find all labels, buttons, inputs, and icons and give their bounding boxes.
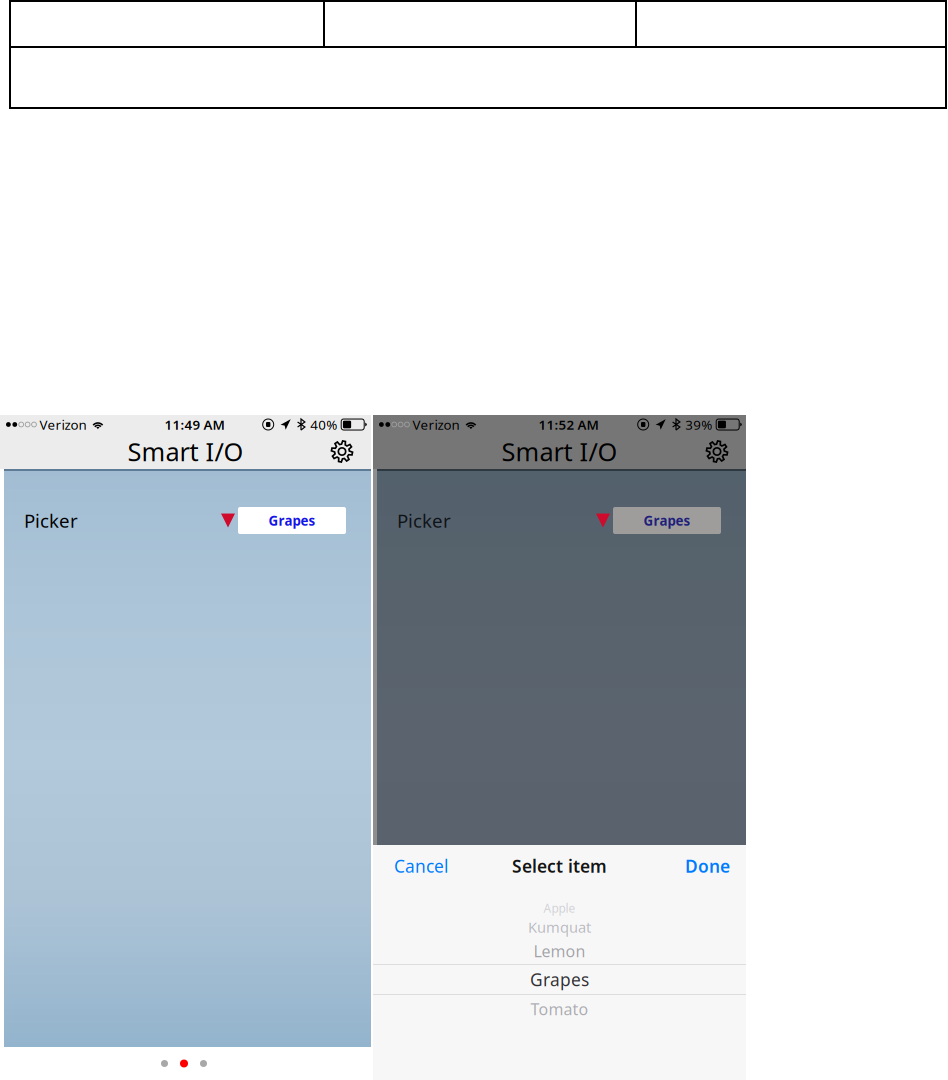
- staticText: Picker: [397, 508, 451, 533]
- staticText: Kumquat: [528, 917, 591, 937]
- staticText: Verizon: [39, 416, 86, 433]
- button[interactable]: Cancel: [389, 845, 453, 886]
- staticText: 11:49 AM: [164, 416, 224, 433]
- button[interactable]: Done: [680, 845, 735, 886]
- staticText: Verizon: [412, 416, 459, 433]
- staticText: Lemon: [533, 940, 585, 962]
- button[interactable]: Settings: [323, 434, 361, 468]
- button[interactable]: Grapes: [613, 507, 721, 534]
- button[interactable]: Settings: [698, 434, 736, 468]
- button[interactable]: Grapes: [238, 507, 346, 534]
- staticText: Grapes: [268, 512, 315, 529]
- staticText: Grapes: [643, 512, 690, 529]
- staticText: Select item: [512, 854, 607, 877]
- staticText: 11:52 AM: [538, 416, 598, 433]
- staticText: Smart I/O: [127, 435, 243, 468]
- staticText: 39%: [685, 416, 712, 433]
- staticText: Done: [685, 854, 730, 877]
- staticText: Cancel: [394, 854, 448, 877]
- staticText: Smart I/O: [501, 435, 617, 468]
- staticText: Picker: [24, 508, 78, 533]
- staticText: Apple: [543, 900, 575, 916]
- staticText: Grapes: [530, 968, 589, 991]
- staticText: Tomato: [530, 998, 588, 1020]
- staticText: 40%: [310, 416, 337, 433]
